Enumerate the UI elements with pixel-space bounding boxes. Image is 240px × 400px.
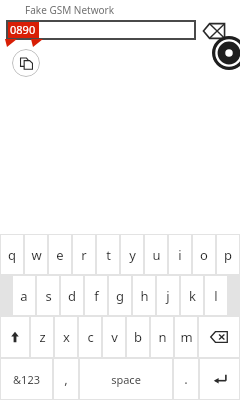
staticText: , — [64, 370, 68, 388]
button[interactable]: , — [54, 359, 78, 399]
button[interactable]: v — [103, 317, 125, 357]
staticText: g — [116, 287, 124, 305]
button[interactable]: p — [217, 235, 239, 274]
staticText: v — [111, 328, 118, 346]
staticText: f — [94, 287, 99, 305]
staticText: h — [140, 287, 149, 305]
button[interactable]: Network badge — [212, 36, 240, 70]
staticText: d — [68, 287, 76, 305]
staticText: m — [180, 328, 193, 346]
button[interactable]: f — [85, 276, 107, 315]
button[interactable]: t — [97, 235, 119, 274]
staticText: n — [158, 328, 167, 346]
staticText: w — [31, 246, 42, 264]
button[interactable]: r — [73, 235, 95, 274]
button[interactable]: d — [61, 276, 83, 315]
button[interactable]: n — [151, 317, 173, 357]
staticText: z — [39, 328, 46, 346]
staticText: s — [45, 287, 52, 305]
button[interactable]: b — [127, 317, 149, 357]
staticText: b — [134, 328, 142, 346]
button[interactable]: Enter — [200, 359, 239, 399]
button[interactable]: w — [25, 235, 47, 274]
button[interactable]: y — [121, 235, 143, 274]
button[interactable]: h — [133, 276, 155, 315]
button[interactable]: x — [55, 317, 77, 357]
staticText: a — [20, 287, 28, 305]
staticText: x — [63, 328, 70, 346]
button[interactable]: space — [80, 359, 172, 399]
staticText: u — [152, 246, 161, 264]
staticText: y — [129, 246, 136, 264]
button[interactable]: 0890 — [6, 20, 196, 40]
staticText: q — [8, 246, 16, 264]
button[interactable]: Backspace — [199, 317, 239, 357]
staticText: i — [178, 246, 182, 264]
button[interactable]: k — [181, 276, 203, 315]
staticText: p — [224, 246, 232, 264]
button[interactable]: z — [31, 317, 53, 357]
staticText: t — [106, 246, 111, 264]
staticText: c — [87, 328, 94, 346]
staticText: . — [184, 370, 188, 388]
staticText: o — [200, 246, 208, 264]
button[interactable]: Clear text — [201, 22, 227, 40]
button[interactable]: l — [205, 276, 227, 315]
staticText: j — [166, 287, 170, 305]
button[interactable]: o — [193, 235, 215, 274]
staticText: 0890 — [10, 22, 36, 37]
button[interactable]: q — [1, 235, 23, 274]
button[interactable]: s — [37, 276, 59, 315]
staticText: Fake GSM Network — [25, 3, 115, 17]
button[interactable]: Shift — [1, 317, 29, 357]
staticText: space — [111, 372, 141, 387]
staticText: l — [214, 287, 218, 305]
staticText: r — [81, 246, 87, 264]
button[interactable]: j — [157, 276, 179, 315]
button[interactable]: g — [109, 276, 131, 315]
button[interactable]: u — [145, 235, 167, 274]
staticText: k — [189, 287, 196, 305]
button[interactable]: . — [174, 359, 198, 399]
staticText: e — [56, 246, 64, 264]
button[interactable]: m — [175, 317, 197, 357]
button[interactable]: a — [13, 276, 35, 315]
button[interactable]: c — [79, 317, 101, 357]
button[interactable]: i — [169, 235, 191, 274]
button[interactable]: &123 — [1, 359, 52, 399]
button[interactable]: e — [49, 235, 71, 274]
staticText: &123 — [13, 372, 40, 387]
button[interactable]: Copy — [12, 49, 40, 77]
